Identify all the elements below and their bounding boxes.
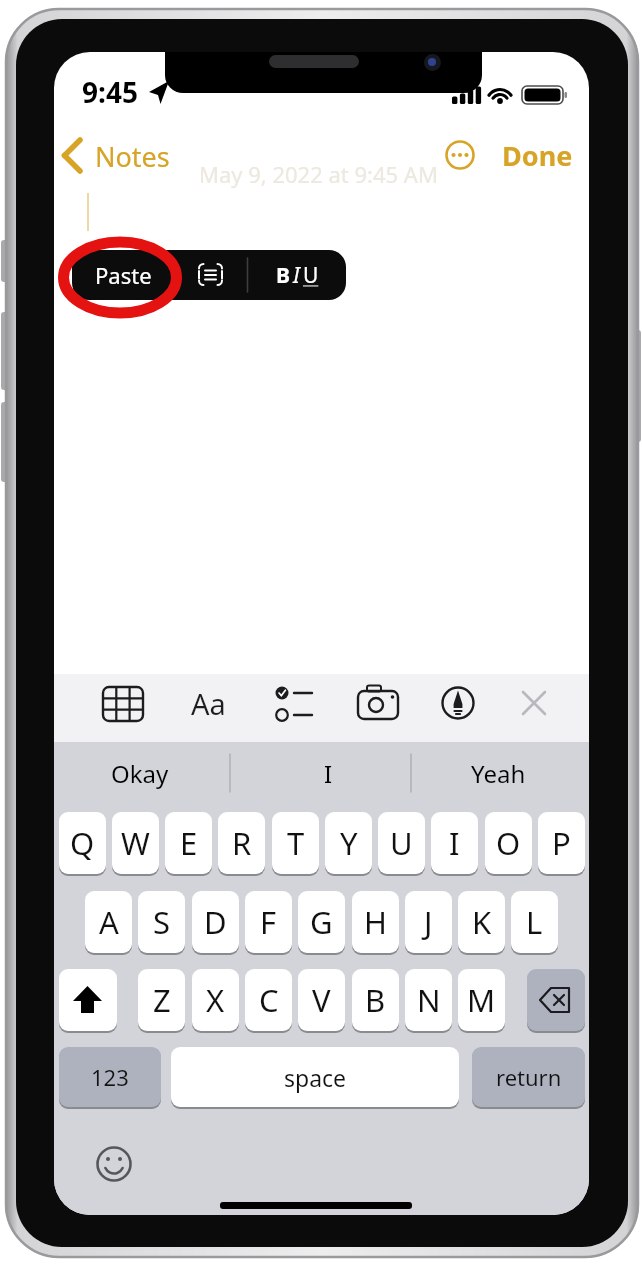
staticText: I bbox=[324, 757, 333, 790]
button[interactable] bbox=[99, 682, 147, 726]
button[interactable]: Notes bbox=[54, 52, 154, 88]
button[interactable]: Okay bbox=[54, 52, 194, 92]
staticText: May 9, 2022 at 9:45 AM bbox=[199, 159, 438, 189]
staticText: Yeah bbox=[471, 757, 526, 790]
button[interactable] bbox=[434, 682, 482, 726]
staticText: X bbox=[206, 979, 225, 1021]
button[interactable]: I bbox=[54, 52, 154, 92]
button[interactable]: A bbox=[85, 891, 132, 953]
staticText: 123 bbox=[91, 1062, 129, 1092]
staticText: A bbox=[99, 901, 119, 943]
staticText: Z bbox=[153, 979, 171, 1021]
staticText: Paste bbox=[95, 260, 152, 290]
button[interactable]: 123 bbox=[59, 1047, 161, 1107]
staticText: L bbox=[526, 901, 543, 943]
staticText: Aa bbox=[191, 684, 226, 723]
button[interactable]: U bbox=[378, 812, 425, 874]
staticText: B bbox=[276, 261, 290, 290]
button[interactable] bbox=[510, 682, 558, 726]
staticText: space bbox=[284, 1062, 347, 1093]
staticText: I bbox=[449, 822, 460, 864]
button[interactable]: C bbox=[245, 969, 292, 1031]
staticText: return bbox=[496, 1062, 562, 1092]
button[interactable]: I bbox=[431, 812, 478, 874]
button[interactable]: T bbox=[272, 812, 319, 874]
button[interactable]: R bbox=[218, 812, 265, 874]
button[interactable]: Y bbox=[325, 812, 372, 874]
staticText: P bbox=[552, 822, 571, 864]
button[interactable]: return bbox=[472, 1047, 585, 1107]
button[interactable]: E bbox=[165, 812, 212, 874]
staticText: F bbox=[260, 901, 277, 943]
button[interactable] bbox=[354, 682, 402, 726]
button[interactable]: M bbox=[458, 969, 505, 1031]
staticText: U bbox=[390, 822, 413, 864]
button[interactable]: V bbox=[298, 969, 345, 1031]
button[interactable]: H bbox=[352, 891, 399, 953]
staticText: V bbox=[312, 979, 331, 1021]
button[interactable]: X bbox=[192, 969, 239, 1031]
button[interactable]: P bbox=[538, 812, 585, 874]
button[interactable] bbox=[446, 137, 474, 165]
button[interactable]: D bbox=[192, 891, 239, 953]
staticText: B bbox=[365, 979, 386, 1021]
staticText: C bbox=[259, 979, 279, 1021]
staticText: Notes bbox=[95, 138, 170, 174]
button[interactable]: W bbox=[112, 812, 159, 874]
staticText: Okay bbox=[111, 757, 169, 790]
button[interactable]: space bbox=[171, 1047, 459, 1107]
button[interactable]: B bbox=[267, 255, 327, 295]
staticText: Done bbox=[502, 137, 573, 173]
button[interactable] bbox=[269, 682, 317, 726]
staticText: H bbox=[364, 901, 387, 943]
staticText: D bbox=[204, 901, 227, 943]
button[interactable] bbox=[90, 1142, 138, 1186]
button[interactable]: G bbox=[298, 891, 345, 953]
button[interactable]: K bbox=[458, 891, 505, 953]
button[interactable]: Yeah bbox=[54, 52, 174, 92]
staticText: Y bbox=[340, 822, 358, 864]
staticText: K bbox=[472, 901, 492, 943]
staticText: J bbox=[424, 901, 433, 943]
button[interactable]: F bbox=[245, 891, 292, 953]
button[interactable]: Done bbox=[54, 52, 134, 88]
button[interactable]: Z bbox=[138, 969, 185, 1031]
button[interactable]: Aa bbox=[54, 52, 124, 96]
staticText: N bbox=[417, 979, 441, 1021]
staticText: R bbox=[232, 822, 252, 864]
button[interactable] bbox=[527, 969, 585, 1031]
staticText: E bbox=[180, 822, 198, 864]
staticText: M bbox=[467, 979, 496, 1021]
staticText: Q bbox=[70, 822, 95, 864]
staticText: I bbox=[293, 261, 300, 290]
button[interactable] bbox=[176, 251, 246, 299]
staticText: U bbox=[303, 261, 319, 290]
button[interactable]: S bbox=[138, 891, 185, 953]
staticText: 9:45 bbox=[82, 73, 138, 107]
button[interactable]: L bbox=[511, 891, 558, 953]
button[interactable]: O bbox=[485, 812, 532, 874]
button[interactable]: Q bbox=[59, 812, 106, 874]
staticText: G bbox=[310, 901, 333, 943]
staticText: T bbox=[287, 822, 305, 864]
button[interactable]: B bbox=[352, 969, 399, 1031]
button[interactable]: J bbox=[405, 891, 452, 953]
button[interactable] bbox=[59, 969, 117, 1031]
staticText: W bbox=[121, 822, 150, 864]
staticText: O bbox=[496, 822, 521, 864]
button[interactable]: Paste bbox=[54, 52, 154, 92]
staticText: S bbox=[153, 901, 171, 943]
button[interactable]: N bbox=[405, 969, 452, 1031]
